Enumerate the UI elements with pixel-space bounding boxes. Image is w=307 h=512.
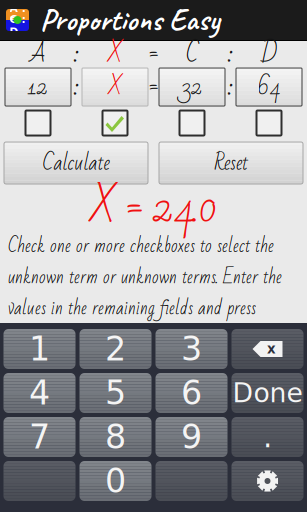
staticText: 5 — [105, 374, 126, 412]
staticText: “Calculate” button to solve the proporti… — [8, 322, 271, 357]
staticText: 3 — [181, 330, 202, 368]
staticText: A : B — [9, 2, 25, 27]
button[interactable]: Unchecked checkbox — [24, 109, 51, 136]
button[interactable]: 7 — [3, 417, 75, 457]
staticText: X — [108, 66, 121, 108]
staticText: 9 — [181, 418, 202, 456]
staticText: Proportions Easy — [40, 1, 219, 39]
button[interactable]: 6 — [155, 373, 227, 413]
button[interactable]: Decimal point — [231, 417, 303, 457]
button[interactable]: Settings — [231, 461, 303, 501]
staticText: 1 — [29, 330, 50, 368]
button[interactable]: 4 — [3, 373, 75, 413]
staticText: 4 — [29, 374, 50, 412]
button[interactable]: 2 — [79, 329, 151, 369]
staticText: D — [261, 32, 277, 76]
staticText: 8 — [105, 418, 126, 456]
staticText: unknown term or unknown terms. Enter the — [8, 260, 282, 294]
button[interactable]: 8 — [79, 417, 151, 457]
staticText: Reset — [214, 143, 248, 183]
staticText: X = 24.0 — [90, 169, 216, 247]
button[interactable]: 5 — [79, 373, 151, 413]
button[interactable]: Backspace — [231, 329, 303, 369]
staticText: = — [148, 65, 158, 109]
button[interactable]: Checked checkbox — [101, 109, 128, 136]
staticText: = — [148, 32, 158, 76]
staticText: 0 — [105, 462, 126, 500]
staticText: A — [30, 32, 46, 76]
staticText: 2 — [105, 330, 126, 368]
button[interactable]: 3 — [155, 329, 227, 369]
staticText: 32 — [181, 66, 202, 108]
staticText: . — [263, 420, 272, 454]
staticText: x — [267, 341, 276, 357]
staticText: 7 — [29, 418, 50, 456]
button[interactable]: 1 — [3, 329, 75, 369]
staticText: 64 — [257, 66, 280, 108]
button[interactable]: Calculate — [4, 142, 148, 184]
button[interactable]: 9 — [155, 417, 227, 457]
button[interactable]: Unchecked checkbox — [255, 109, 282, 136]
staticText: 12 — [28, 66, 48, 108]
staticText: : — [228, 32, 233, 76]
staticText: : — [74, 32, 79, 76]
button[interactable]: Unchecked checkbox — [178, 109, 205, 136]
staticText: C — [186, 32, 198, 76]
staticText: : — [228, 65, 233, 109]
staticText: Calculate — [42, 143, 109, 183]
button[interactable]: Reset — [159, 142, 303, 184]
staticText: Done — [232, 377, 302, 408]
staticText: 6 — [181, 374, 202, 412]
button[interactable]: 0 — [79, 461, 151, 501]
staticText: : — [74, 65, 79, 109]
button[interactable]: Done — [231, 373, 303, 413]
staticText: values in the remaining fields and press — [8, 291, 256, 326]
staticText: X — [108, 32, 122, 76]
staticText: C : D — [9, 13, 25, 38]
staticText: Check one or more checkboxes to select t… — [8, 229, 274, 263]
